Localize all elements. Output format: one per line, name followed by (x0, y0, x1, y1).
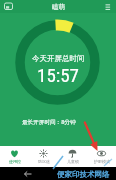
staticText: 瞌萌 (52, 3, 65, 11)
button[interactable]: 使用控 (0, 146, 29, 167)
button[interactable]: 防沉迷 (29, 146, 58, 167)
button[interactable]: 护眼模式 (87, 146, 116, 167)
staticText: 防沉迷 (38, 159, 50, 164)
button[interactable]: 儿童锁 (58, 146, 87, 167)
staticText: 15:57 (37, 64, 79, 85)
staticText: 护眼模式 (94, 159, 110, 164)
staticText: 使用控 (9, 159, 21, 164)
button[interactable] (4, 2, 13, 11)
staticText: 便家印技术网络 (57, 170, 110, 179)
staticText: 最长开屏时间：8分钟 (22, 118, 76, 126)
staticText: 儿童锁 (67, 159, 79, 164)
button[interactable] (23, 169, 33, 179)
button[interactable] (104, 3, 112, 11)
staticText: 今天开屏总时间 (32, 54, 85, 63)
